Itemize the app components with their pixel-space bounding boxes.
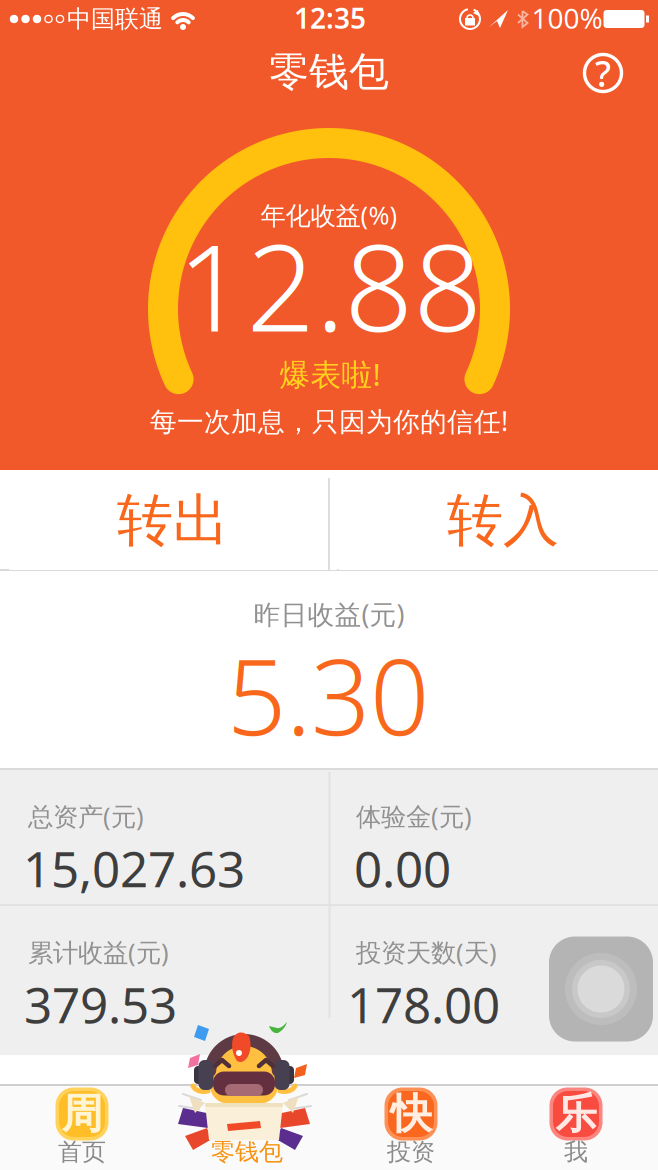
staticText: 中国联通 (67, 4, 163, 34)
staticText: 12.88 (177, 205, 482, 365)
button[interactable]: 快 (329, 1086, 493, 1170)
staticText: 体验金(元) (356, 799, 472, 833)
button[interactable]: 周 (0, 1086, 164, 1170)
staticText: 昨日收益(元) (253, 596, 404, 632)
button[interactable]: 转入 (339, 471, 658, 570)
staticText: 0.00 (354, 835, 451, 901)
staticText: 总资产(元) (28, 799, 144, 833)
staticText: 乐 (555, 1089, 596, 1139)
staticText: 100% (531, 0, 602, 37)
staticText: 爆表啦! (279, 354, 380, 394)
staticText: 首页 (58, 1137, 106, 1167)
staticText: 转入 (447, 486, 559, 555)
staticText: 379.53 (24, 971, 177, 1037)
staticText: 年化收益(%) (260, 198, 397, 232)
staticText: 投资 (387, 1137, 435, 1167)
button[interactable]: ? (581, 51, 625, 95)
staticText: 每一次加息，只因为你的信任! (150, 403, 508, 439)
button[interactable]: 零钱包 (165, 1020, 329, 1170)
staticText: 12:35 (294, 0, 366, 37)
staticText: 178.00 (347, 971, 500, 1037)
staticText: 投资天数(天) (356, 935, 497, 969)
staticText: ? (595, 49, 611, 97)
staticText: 转出 (117, 486, 229, 555)
staticText: 5.30 (227, 626, 429, 764)
staticText: 快 (390, 1089, 431, 1139)
staticText: 15,027.63 (23, 835, 245, 901)
staticText: 零钱包 (269, 47, 389, 96)
button[interactable]: 转出 (9, 471, 337, 570)
staticText: 零钱包 (211, 1137, 283, 1167)
button[interactable] (549, 936, 653, 1041)
button[interactable]: 乐 (494, 1086, 658, 1170)
staticText: 周 (61, 1089, 102, 1139)
staticText: 累计收益(元) (28, 935, 169, 969)
staticText: 我 (564, 1137, 588, 1167)
